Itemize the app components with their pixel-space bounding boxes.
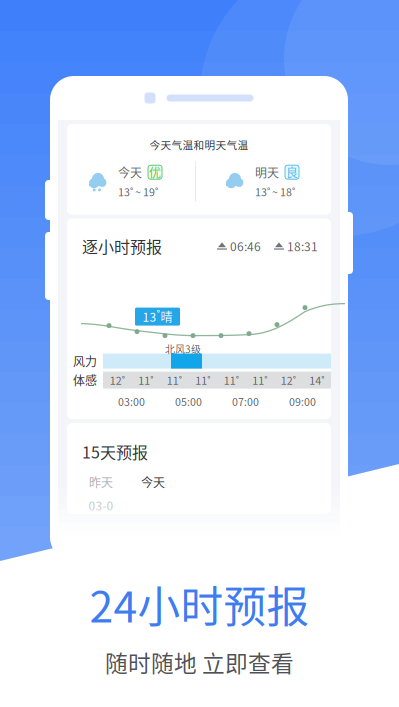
staticText: 06:46 bbox=[230, 237, 261, 255]
staticText: 今天气温和明天气温 bbox=[149, 137, 248, 152]
staticText: 11˚ bbox=[167, 372, 182, 388]
button[interactable]: 今天气温和明天气温 bbox=[58, 120, 340, 214]
staticText: 11˚ bbox=[224, 372, 239, 388]
staticText: 今天 bbox=[118, 163, 142, 181]
staticText: 09:00 bbox=[289, 394, 316, 409]
staticText: 07:00 bbox=[232, 394, 259, 409]
staticText: 13˚晴 bbox=[142, 308, 172, 325]
staticText: 15天预报 bbox=[82, 440, 148, 463]
staticText: 18:31 bbox=[287, 237, 318, 255]
staticText: 昨天 bbox=[89, 473, 113, 491]
staticText: 风力 bbox=[73, 352, 97, 370]
staticText: 03-0 bbox=[88, 497, 113, 514]
staticText: 12˚ bbox=[110, 372, 125, 388]
staticText: 13˚ ~ 19˚ bbox=[118, 184, 158, 199]
staticText: 14˚ bbox=[309, 372, 324, 388]
staticText: 体感 bbox=[73, 371, 97, 389]
staticText: 12˚ bbox=[281, 372, 296, 388]
staticText: 明天 bbox=[255, 163, 279, 181]
staticText: 优 bbox=[149, 163, 161, 181]
staticText: 03:00 bbox=[118, 394, 145, 409]
staticText: 逐小时预报 bbox=[82, 234, 162, 258]
staticText: 05:00 bbox=[175, 394, 202, 409]
staticText: 13˚ ~ 18˚ bbox=[255, 184, 295, 199]
staticText: 今天 bbox=[141, 473, 165, 491]
staticText: 北风3级 bbox=[165, 342, 201, 356]
staticText: 11˚ bbox=[195, 372, 210, 388]
staticText: 随时随地 立即查看 bbox=[105, 646, 294, 679]
staticText: 11˚ bbox=[138, 372, 153, 388]
staticText: 24小时预报 bbox=[89, 573, 309, 635]
staticText: 11˚ bbox=[252, 372, 267, 388]
staticText: 良 bbox=[286, 163, 298, 181]
